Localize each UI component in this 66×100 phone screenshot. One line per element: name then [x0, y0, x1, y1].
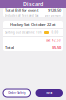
- staticText: $5.50: [52, 45, 61, 50]
- staticText: $128.50: [48, 8, 61, 13]
- staticText: Includes all fees and tax: [5, 14, 38, 17]
- staticText: Discard: [23, 0, 43, 8]
- staticText: Sorting out deadline 10h: [5, 31, 42, 34]
- staticText: Next: [46, 91, 52, 95]
- button[interactable]: Order Safety: [3, 89, 30, 97]
- staticText: Total Bill for event: [5, 8, 39, 13]
- staticText: save $2.50: [46, 39, 61, 42]
- staticText: per person: [45, 14, 61, 17]
- staticText: Order Safety: [8, 91, 25, 95]
- staticText: Hockey Sat October 22 at: [10, 22, 56, 27]
- staticText: 0.00: [51, 31, 58, 34]
- staticText: Total: [5, 45, 14, 50]
- button[interactable]: Next: [35, 89, 63, 97]
